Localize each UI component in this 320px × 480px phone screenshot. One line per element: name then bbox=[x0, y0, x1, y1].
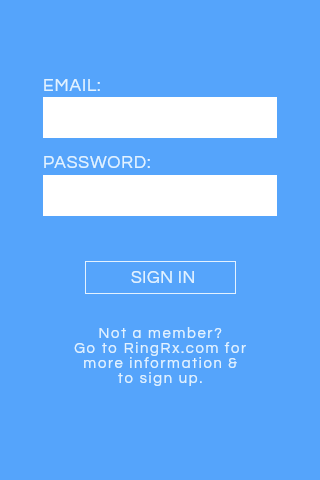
button[interactable]: Not a member? Go to RingRx.com for more … bbox=[74, 326, 248, 386]
button[interactable]: SIGN IN bbox=[85, 261, 236, 294]
staticText: SIGN IN bbox=[131, 269, 196, 287]
staticText: EMAIL: bbox=[43, 77, 102, 95]
staticText: PASSWORD: bbox=[43, 154, 152, 172]
